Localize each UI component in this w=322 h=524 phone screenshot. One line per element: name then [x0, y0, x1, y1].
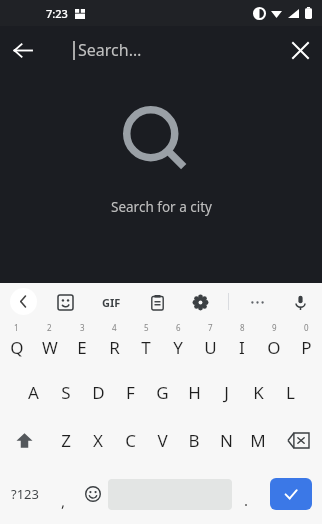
- button[interactable]: V: [146, 416, 178, 464]
- staticText: X: [93, 429, 103, 452]
- staticText: I: [239, 336, 245, 359]
- button[interactable]: 8: [226, 320, 258, 368]
- staticText: Q: [10, 336, 24, 359]
- button[interactable]: Search: [270, 478, 312, 510]
- button[interactable]: 3: [66, 320, 98, 368]
- button[interactable]: 2: [33, 320, 66, 368]
- button[interactable]: S: [50, 368, 82, 416]
- button[interactable]: ?123: [0, 464, 49, 524]
- button[interactable]: Voice input: [285, 287, 315, 317]
- button[interactable]: Z: [49, 416, 82, 464]
- button[interactable]: H: [178, 368, 210, 416]
- staticText: F: [126, 381, 135, 404]
- staticText: K: [253, 381, 264, 404]
- button[interactable]: X: [82, 416, 114, 464]
- staticText: Z: [61, 429, 71, 452]
- staticText: R: [109, 336, 120, 359]
- staticText: A: [28, 381, 39, 404]
- button[interactable]: L: [274, 368, 306, 416]
- staticText: 0: [304, 322, 309, 333]
- staticText: .: [244, 490, 249, 510]
- button[interactable]: B: [178, 416, 210, 464]
- button[interactable]: J: [210, 368, 242, 416]
- button[interactable]: 6: [162, 320, 194, 368]
- button[interactable]: GIF: [94, 285, 128, 319]
- staticText: M: [250, 429, 266, 452]
- staticText: Y: [173, 336, 183, 359]
- button[interactable]: 5: [130, 320, 162, 368]
- staticText: N: [220, 429, 233, 452]
- staticText: Search…: [78, 39, 142, 61]
- staticText: O: [267, 336, 281, 359]
- staticText: E: [77, 336, 87, 359]
- staticText: W: [42, 336, 58, 359]
- staticText: 2: [47, 322, 52, 333]
- staticText: D: [92, 381, 105, 404]
- staticText: L: [286, 381, 295, 404]
- staticText: 3: [80, 322, 85, 333]
- staticText: C: [125, 429, 136, 452]
- staticText: Search for a city: [111, 198, 212, 216]
- button[interactable]: F: [114, 368, 146, 416]
- button[interactable]: Emoji: [77, 464, 108, 524]
- staticText: 4: [112, 322, 117, 333]
- staticText: 7: [208, 322, 213, 333]
- staticText: 9: [272, 322, 277, 333]
- staticText: 5: [144, 322, 149, 333]
- button[interactable]: .: [232, 464, 260, 524]
- button[interactable]: Expand toolbar: [10, 288, 37, 315]
- button[interactable]: Back: [0, 28, 44, 72]
- button[interactable]: Stickers: [50, 287, 80, 317]
- staticText: H: [188, 381, 201, 404]
- staticText: U: [204, 336, 217, 359]
- button[interactable]: Shift: [0, 416, 49, 464]
- button[interactable]: 9: [258, 320, 290, 368]
- button[interactable]: K: [242, 368, 274, 416]
- staticText: B: [188, 429, 200, 452]
- button[interactable]: 1: [0, 320, 33, 368]
- button[interactable]: More options: [242, 287, 272, 317]
- button[interactable]: 0: [290, 320, 322, 368]
- button[interactable]: 4: [98, 320, 130, 368]
- staticText: 7:23: [46, 6, 68, 21]
- staticText: ,: [61, 491, 66, 511]
- button[interactable]: Clear: [278, 28, 322, 72]
- button[interactable]: 7: [194, 320, 226, 368]
- staticText: 6: [176, 322, 181, 333]
- staticText: S: [61, 381, 71, 404]
- staticText: T: [141, 336, 151, 359]
- button[interactable]: Settings: [185, 287, 215, 317]
- staticText: 8: [240, 322, 245, 333]
- staticText: 1: [14, 322, 19, 333]
- staticText: GIF: [102, 295, 121, 310]
- button[interactable]: C: [114, 416, 146, 464]
- staticText: V: [157, 429, 168, 452]
- staticText: J: [224, 381, 229, 404]
- staticText: P: [301, 336, 312, 359]
- button[interactable]: M: [242, 416, 274, 464]
- button[interactable]: A: [17, 368, 50, 416]
- staticText: ?123: [11, 485, 39, 503]
- button[interactable]: Clipboard: [142, 287, 172, 317]
- button[interactable]: N: [210, 416, 242, 464]
- staticText: G: [156, 381, 169, 404]
- button[interactable]: Backspace: [274, 416, 322, 464]
- button[interactable]: D: [82, 368, 114, 416]
- button[interactable]: G: [146, 368, 178, 416]
- button[interactable]: ,: [49, 464, 77, 524]
